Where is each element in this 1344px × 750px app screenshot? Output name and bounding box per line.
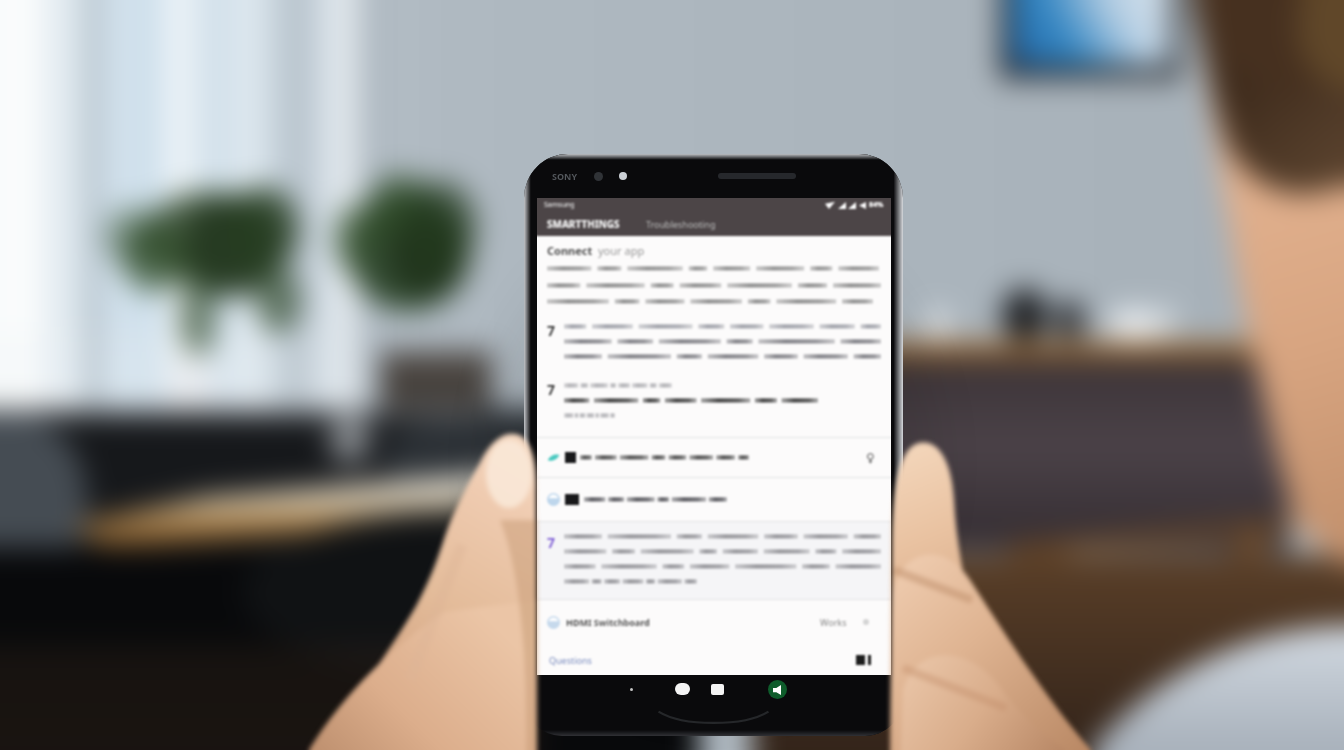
button[interactable]: Voice assistant	[768, 680, 787, 699]
button[interactable]: Questions	[547, 650, 594, 670]
button[interactable]: Smart device entry	[547, 438, 881, 477]
button[interactable]: Setup details	[547, 533, 881, 588]
staticText: Connect	[547, 243, 593, 258]
staticText: Troubleshooting	[646, 218, 716, 230]
button[interactable]: Troubleshooting	[644, 212, 718, 236]
staticText: 7	[547, 380, 556, 399]
staticText: SONY	[552, 170, 578, 182]
button[interactable]: Setup step	[547, 321, 881, 360]
button[interactable]: Recent apps	[711, 684, 724, 695]
staticText: ♀	[866, 451, 875, 465]
button[interactable]: SMARTTHINGS	[545, 212, 622, 236]
staticText: HDMI Switchboard	[566, 616, 650, 628]
staticText: Works	[820, 616, 847, 628]
staticText: Questions	[549, 654, 592, 666]
staticText: 7	[547, 533, 556, 552]
staticText: Samsung	[544, 200, 575, 210]
staticText: SMARTTHINGS	[547, 217, 620, 231]
button[interactable]: Home	[675, 683, 690, 695]
button[interactable]: Linked account entry	[547, 478, 881, 521]
button[interactable]: Setup step	[547, 380, 881, 419]
staticText: 84%	[869, 200, 884, 210]
staticText: 7	[547, 321, 556, 340]
button[interactable]: HDMI Switchboard	[547, 600, 881, 644]
staticText: your app	[598, 243, 645, 258]
